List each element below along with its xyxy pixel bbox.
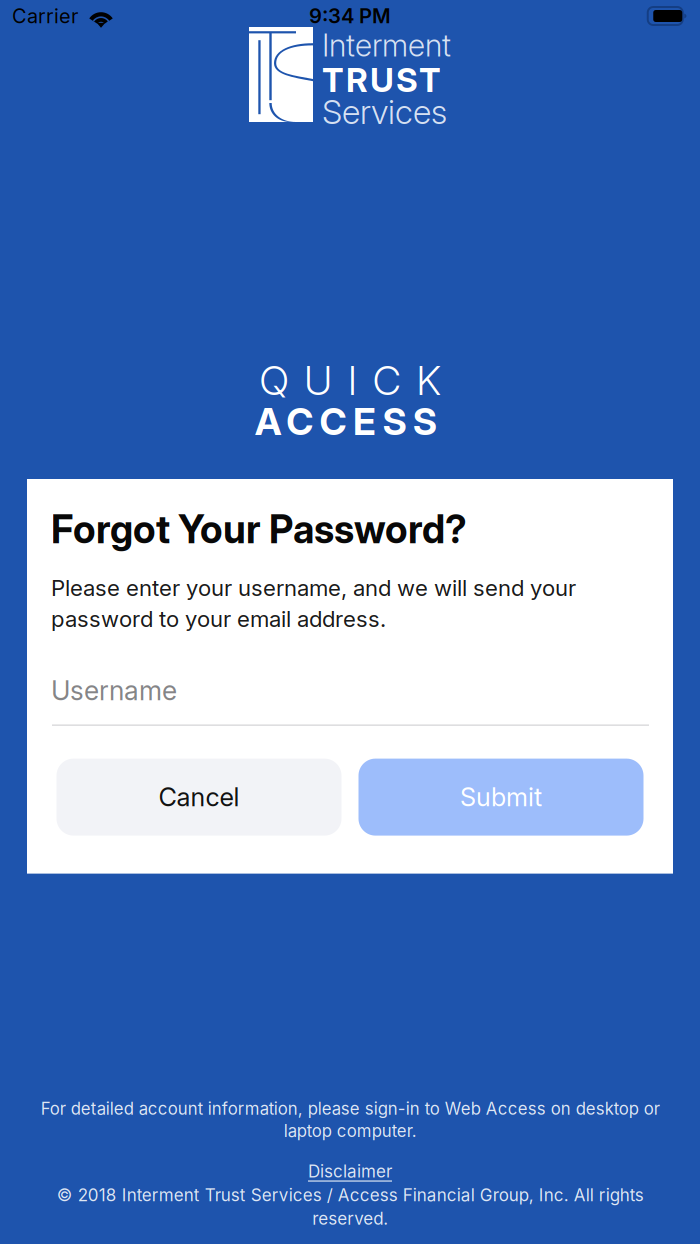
- staticText: Cancel: [158, 782, 239, 812]
- button[interactable]: Submit: [358, 759, 643, 836]
- staticText: Interment: [322, 27, 451, 64]
- button[interactable]: Disclaimer: [308, 1161, 392, 1182]
- staticText: Please enter your username, and we will …: [51, 574, 576, 632]
- staticText: Carrier: [12, 4, 78, 28]
- staticText: TRUST: [322, 60, 441, 100]
- staticText: 9:34 PM: [309, 4, 391, 28]
- staticText: For detailed account information, please…: [40, 1099, 659, 1141]
- staticText: Forgot Your Password?: [51, 506, 467, 552]
- staticText: QUICK: [259, 356, 441, 405]
- staticText: © 2018 Interment Trust Services / Access…: [56, 1185, 643, 1229]
- staticText: Services: [322, 92, 447, 132]
- staticText: Disclaimer: [308, 1161, 392, 1182]
- staticText: Username: [51, 674, 177, 707]
- staticText: ACCESS: [255, 399, 445, 444]
- button[interactable]: Cancel: [56, 759, 341, 836]
- staticText: Submit: [460, 782, 542, 812]
